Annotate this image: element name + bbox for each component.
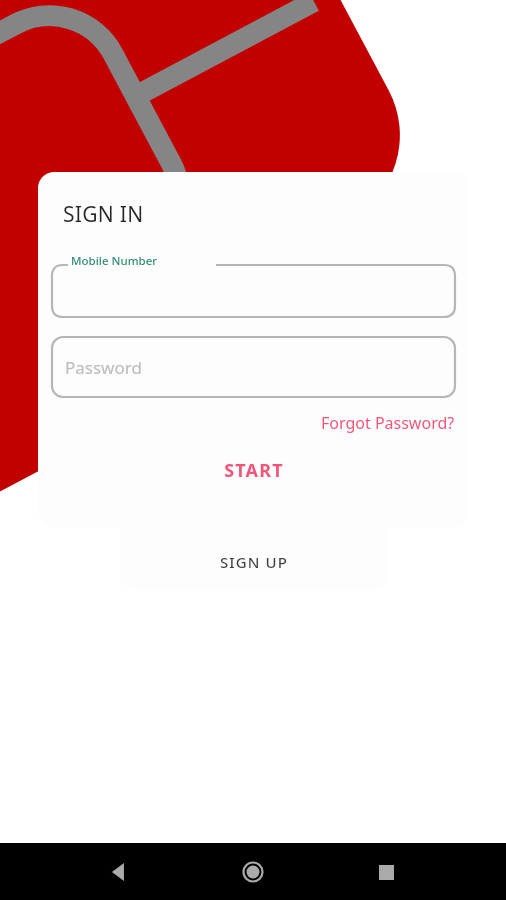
staticText: SIGN UP [220, 552, 288, 572]
staticText: START [224, 458, 284, 483]
staticText: SIGN IN [63, 200, 144, 229]
staticText: Forgot Password? [321, 412, 455, 434]
button[interactable]: SIGN UP [120, 440, 388, 590]
button[interactable]: Password [50, 336, 457, 398]
button[interactable]: Forgot Password? [321, 410, 469, 436]
staticText: Password [65, 356, 142, 379]
button[interactable]: START [206, 452, 302, 489]
staticText: Mobile Number [71, 253, 158, 269]
button[interactable]: Recent apps [362, 848, 410, 896]
button[interactable]: Home [229, 848, 277, 896]
button[interactable]: Back [96, 848, 144, 896]
button[interactable]: Mobile Number [50, 255, 457, 325]
